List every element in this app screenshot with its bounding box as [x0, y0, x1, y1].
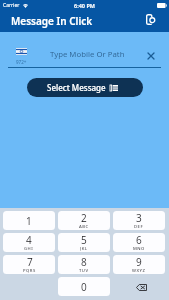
staticText: 4 [26, 233, 32, 247]
staticText: 0 [81, 280, 87, 294]
staticText: Message In Click [11, 14, 93, 28]
button[interactable]: 972+ [15, 48, 28, 65]
button[interactable]: 6 [113, 233, 165, 252]
staticText: 972+ [16, 59, 27, 65]
staticText: WXYZ [132, 268, 146, 273]
staticText: 3 [136, 211, 142, 225]
staticText: GHI [24, 246, 34, 251]
button[interactable]: Backspace [113, 277, 165, 296]
button[interactable]: 9 [113, 255, 165, 274]
staticText: Type Mobile Or Path [50, 49, 125, 60]
button[interactable]: 2 [58, 211, 110, 230]
button[interactable]: 4 [3, 233, 55, 252]
staticText: 7 [27, 255, 33, 269]
staticText: DEF [134, 224, 144, 229]
staticText: MNO [133, 246, 145, 251]
button[interactable]: 0 [58, 277, 110, 296]
button[interactable]: 7 [3, 255, 55, 274]
staticText: Select Message [47, 82, 106, 93]
button[interactable]: 8 [58, 255, 110, 274]
staticText: 2 [81, 211, 87, 225]
button[interactable]: Clear [144, 49, 158, 63]
staticText: Carrier [3, 2, 20, 9]
staticText: TUV [79, 268, 89, 273]
staticText: JKL [80, 246, 88, 251]
staticText: 5 [81, 233, 87, 247]
button[interactable]: Select Message [27, 78, 143, 97]
button[interactable]: 1 [3, 211, 55, 230]
staticText: 9 [136, 255, 142, 269]
staticText: 8 [81, 255, 87, 269]
button[interactable]: 5 [58, 233, 110, 252]
staticText: 1 [26, 214, 32, 228]
staticText: ABC [79, 224, 89, 229]
button[interactable]: 3 [113, 211, 165, 230]
button[interactable]: Connect device [145, 12, 162, 29]
staticText: 6:40 PM [74, 2, 95, 9]
staticText: PQRS [23, 268, 36, 273]
staticText: 6 [136, 233, 142, 247]
button[interactable]: Type Mobile Or Path [32, 48, 142, 60]
